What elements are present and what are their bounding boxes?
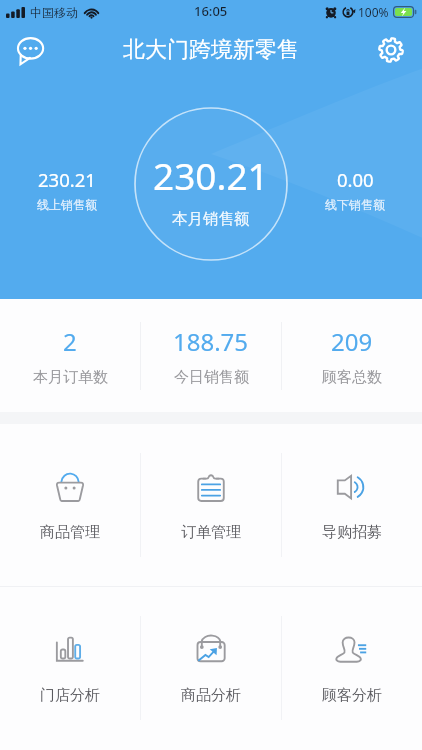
staticText: 门店分析 bbox=[40, 686, 100, 705]
staticText: 209 bbox=[331, 325, 373, 358]
staticText: 线上销售额 bbox=[37, 197, 97, 212]
staticText: 商品管理 bbox=[40, 523, 100, 542]
staticText: 230.21 bbox=[38, 167, 96, 192]
staticText: 顾客总数 bbox=[322, 368, 382, 387]
staticText: 顾客分析 bbox=[322, 686, 382, 705]
staticText: 北大门跨境新零售 bbox=[123, 36, 299, 64]
button[interactable]: 商品分析 bbox=[141, 587, 281, 749]
staticText: 导购招募 bbox=[322, 523, 382, 542]
button[interactable]: 209 bbox=[282, 325, 422, 387]
staticText: 0.00 bbox=[337, 167, 374, 192]
staticText: 本月销售额 bbox=[172, 209, 250, 229]
staticText: 2 bbox=[63, 325, 77, 358]
staticText: 线下销售额 bbox=[325, 197, 385, 212]
staticText: 188.75 bbox=[173, 325, 249, 358]
staticText: 今日销售额 bbox=[174, 368, 249, 387]
button[interactable]: 188.75 bbox=[141, 325, 281, 387]
button[interactable]: Messages bbox=[10, 30, 50, 70]
button[interactable]: 顾客分析 bbox=[282, 587, 422, 749]
button[interactable]: 门店分析 bbox=[0, 587, 140, 749]
staticText: 230.21 bbox=[153, 150, 269, 200]
staticText: 订单管理 bbox=[181, 523, 241, 542]
button[interactable]: 订单管理 bbox=[141, 424, 281, 586]
button[interactable]: 商品管理 bbox=[0, 424, 140, 586]
staticText: 16:05 bbox=[194, 2, 228, 20]
staticText: 中国移动 bbox=[30, 5, 78, 20]
button[interactable]: 2 bbox=[0, 325, 140, 387]
staticText: 100% bbox=[358, 4, 389, 20]
staticText: 商品分析 bbox=[181, 686, 241, 705]
button[interactable]: Settings bbox=[371, 30, 411, 70]
button[interactable]: 导购招募 bbox=[282, 424, 422, 586]
staticText: 本月订单数 bbox=[33, 368, 108, 387]
